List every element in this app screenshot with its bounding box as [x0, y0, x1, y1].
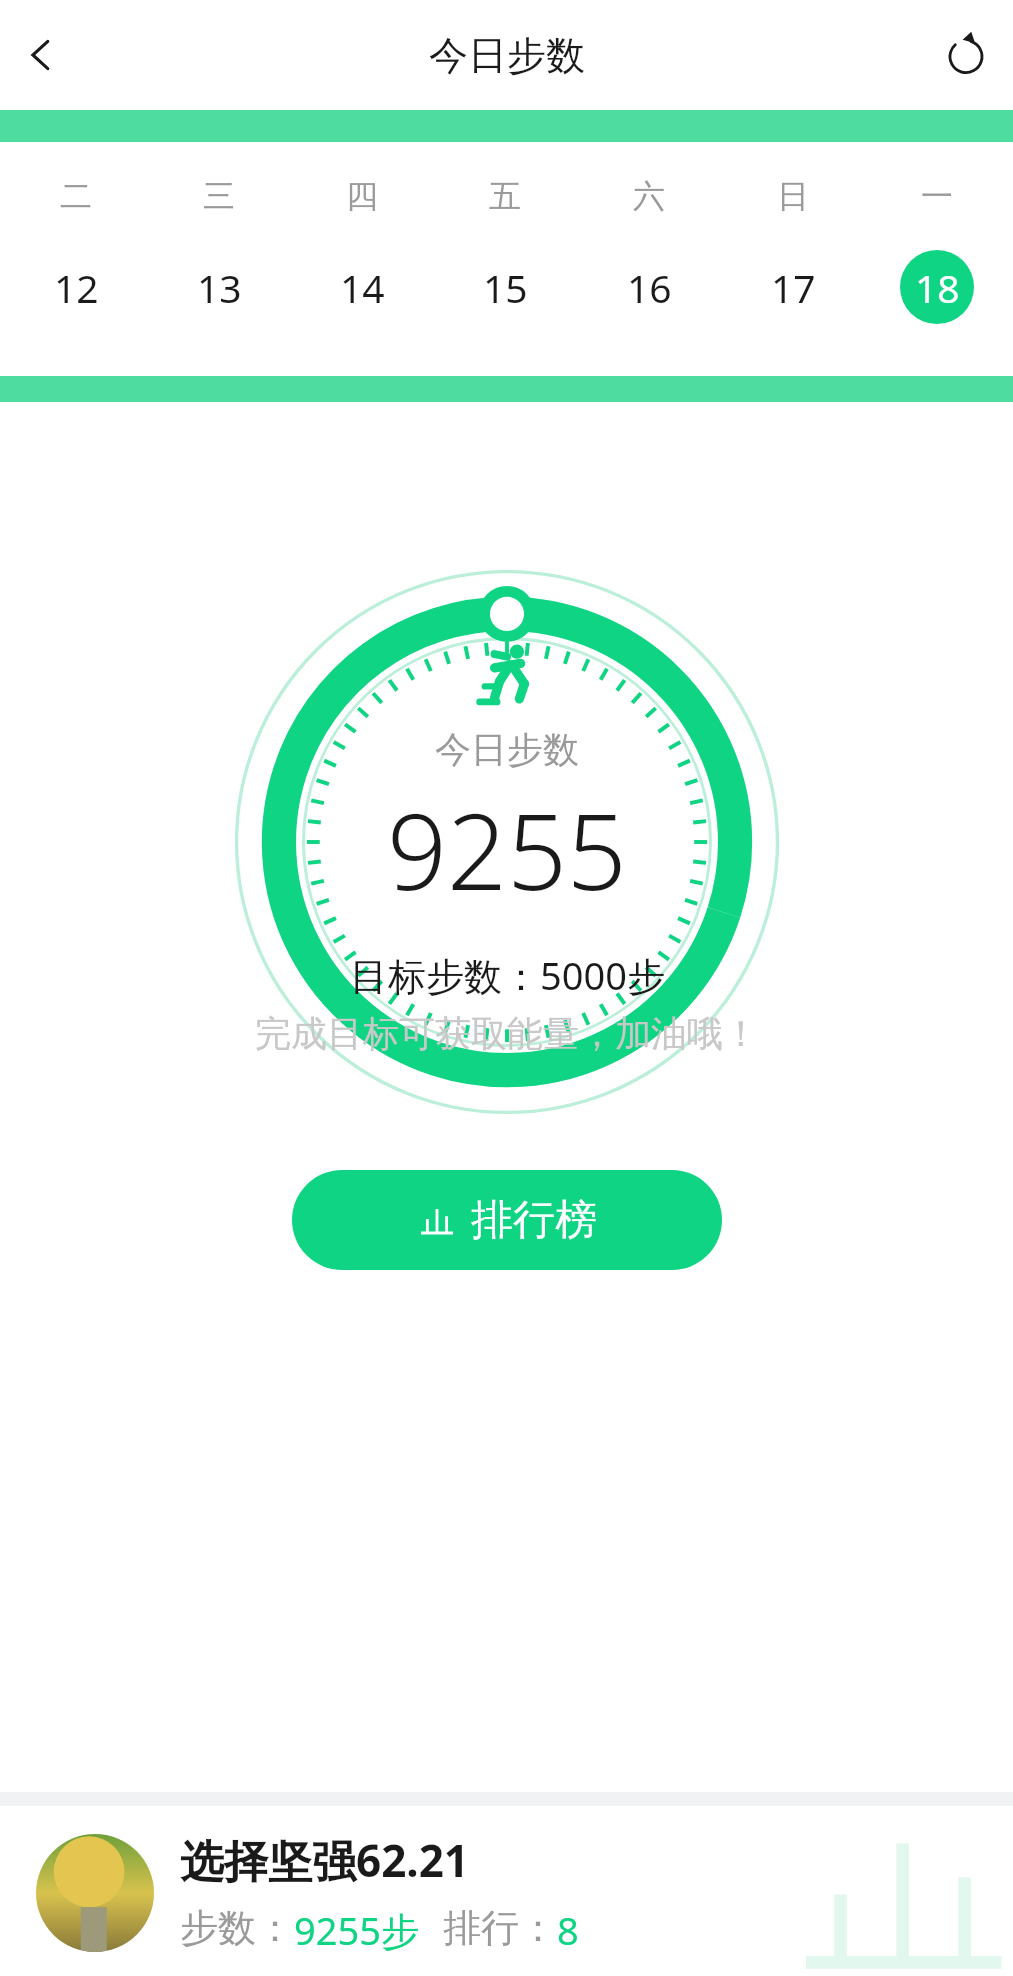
staticText: 14 [340, 261, 385, 314]
staticText: 五 [489, 176, 521, 216]
staticText: 9255 [387, 778, 627, 921]
staticText: 8 [557, 1904, 579, 1956]
staticText: 步数： [180, 1904, 294, 1952]
staticText: 排行榜 [471, 1194, 597, 1247]
button[interactable]: Refresh [931, 20, 1001, 90]
staticText: 二 [60, 176, 92, 216]
button[interactable]: 日 [721, 176, 865, 324]
staticText: 今日步数 [435, 727, 579, 772]
staticText: 三 [203, 176, 235, 216]
staticText: 18 [915, 261, 960, 314]
staticText: 选择坚强62.21 [180, 1830, 470, 1890]
staticText: 9255步 [294, 1904, 419, 1956]
staticText: 15 [483, 261, 528, 314]
staticText: 排行： [443, 1904, 557, 1952]
button[interactable]: 五 [433, 176, 577, 324]
button[interactable]: Back [6, 20, 76, 90]
button[interactable]: 排行榜 [292, 1170, 722, 1270]
staticText: 13 [197, 261, 242, 314]
staticText: 四 [346, 176, 378, 216]
staticText: 六 [633, 176, 665, 216]
staticText: 目标步数：5000步 [350, 949, 665, 1001]
button[interactable]: 四 [290, 176, 433, 324]
button[interactable]: 一 [865, 176, 1009, 324]
staticText: 16 [627, 261, 672, 314]
staticText: 今日步数 [429, 31, 585, 80]
staticText: 一 [921, 176, 953, 216]
staticText: 完成目标可获取能量，加油哦！ [255, 1011, 759, 1056]
button[interactable]: 选择坚强62.21 [36, 1830, 1013, 1956]
button[interactable]: 六 [577, 176, 721, 324]
staticText: 12 [54, 261, 99, 314]
button[interactable]: 三 [147, 176, 290, 324]
staticText: 17 [771, 261, 816, 314]
staticText: 日 [777, 176, 809, 216]
button[interactable]: 二 [4, 176, 147, 324]
